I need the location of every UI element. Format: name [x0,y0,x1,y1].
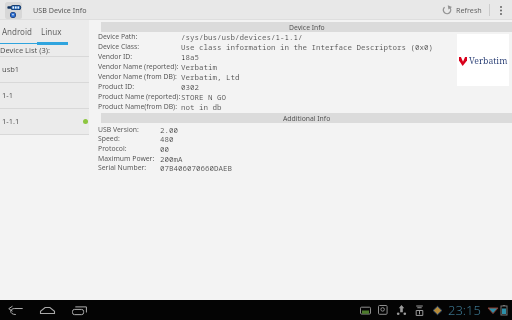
button[interactable]: Home [39,303,55,317]
staticText: Device List (3): [0,45,50,55]
staticText: Product Name(from DB): [98,102,177,111]
staticText: USB Version: [98,125,139,134]
staticText: 1-1 [2,90,13,100]
staticText: USB Device Info [33,5,87,15]
staticText: 480 [160,134,174,144]
staticText: 200mA [160,154,183,164]
button[interactable]: Refresh [437,0,489,20]
button[interactable]: Android [0,22,34,41]
staticText: Verbatim, Ltd [181,72,240,82]
button[interactable]: More options [490,0,512,20]
button[interactable]: Back [7,303,23,317]
staticText: not in db [181,102,222,112]
staticText: Android [2,26,32,37]
staticText: STORE N GO [181,92,226,102]
staticText: Device Info [289,23,325,32]
staticText: Maximum Power: [98,154,155,163]
button[interactable]: usb1 [0,56,89,82]
staticText: Vendor ID: [98,52,133,61]
button[interactable]: 1-1.1 [0,108,89,134]
staticText: Verbatim [181,62,217,72]
staticText: Serial Number: [98,163,147,172]
staticText: 23:15 [448,301,481,319]
staticText: 0302 [181,82,199,92]
staticText: 2.00 [160,125,178,135]
button[interactable]: Linux [34,22,68,41]
button[interactable]: Recent apps [71,303,87,317]
staticText: Device Path: [98,32,138,41]
staticText: 18a5 [181,52,199,62]
staticText: Linux [41,26,62,37]
staticText: 07B406070660DAEB [160,163,232,173]
staticText: Product ID: [98,82,135,91]
button[interactable]: 1-1 [0,82,89,108]
staticText: Refresh [456,5,482,15]
staticText: Device Class: [98,42,140,51]
staticText: Vendor Name (from DB): [98,72,177,81]
staticText: usb1 [2,64,20,74]
staticText: /sys/bus/usb/devices/1-1.1/ [181,32,303,42]
staticText: Use class information in the Interface D… [181,42,433,52]
staticText: Additional Info [283,114,331,123]
staticText: Protocol: [98,144,127,153]
staticText: Speed: [98,134,120,143]
staticText: 00 [160,144,169,154]
staticText: Vendor Name (reported): [98,62,179,71]
staticText: Product Name (reported): [98,92,181,101]
staticText: Verbatim [469,55,508,67]
staticText: 1-1.1 [2,116,20,126]
